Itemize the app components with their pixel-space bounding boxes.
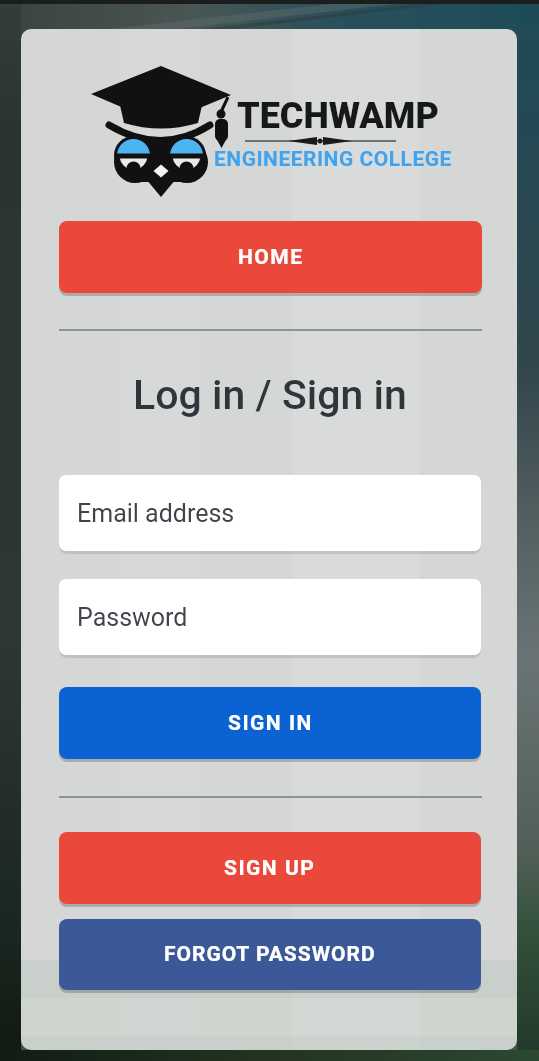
staticText: HOME [238,245,304,270]
button[interactable]: FORGOT PASSWORD [59,919,481,990]
button[interactable]: Email address [59,475,481,551]
button[interactable]: Password [59,579,481,655]
staticText: SIGN UP [224,856,316,881]
staticText: Password [77,603,188,632]
button[interactable]: HOME [59,221,482,293]
staticText: Email address [77,499,235,528]
button[interactable]: SIGN UP [59,832,481,904]
staticText: SIGN IN [228,711,313,736]
staticText: Log in / Sign in [133,371,407,419]
staticText: ENGINEERING COLLEGE [214,147,452,172]
button[interactable]: SIGN IN [59,687,481,759]
staticText: TECHWAMP [237,95,439,137]
staticText: FORGOT PASSWORD [164,942,376,967]
